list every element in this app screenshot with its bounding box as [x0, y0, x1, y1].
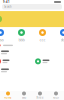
button[interactable]: aaa [0, 29, 7, 42]
staticText: 9:41 [3, 0, 10, 4]
staticText: Four [53, 96, 59, 99]
button[interactable]: Three [32, 91, 48, 99]
button[interactable] [0, 11, 64, 27]
button[interactable] [0, 48, 64, 56]
button[interactable]: Two [16, 91, 32, 99]
button[interactable]: Four [48, 91, 64, 99]
staticText: Search [4, 5, 12, 8]
staticText: Three [36, 96, 44, 99]
button[interactable]: Home [0, 91, 16, 99]
staticText: aaa [0, 37, 3, 42]
button[interactable]: ddd [57, 29, 64, 42]
staticText: bbb [18, 37, 24, 42]
staticText: ddd [60, 37, 64, 42]
button[interactable] [0, 56, 31, 66]
staticText: Two [21, 96, 26, 99]
button[interactable]: bbb [15, 29, 28, 42]
button[interactable]: ccc [36, 29, 49, 42]
staticText: Home [4, 96, 12, 99]
button[interactable] [33, 56, 64, 66]
staticText: ccc [39, 37, 45, 42]
button[interactable] [0, 66, 64, 74]
